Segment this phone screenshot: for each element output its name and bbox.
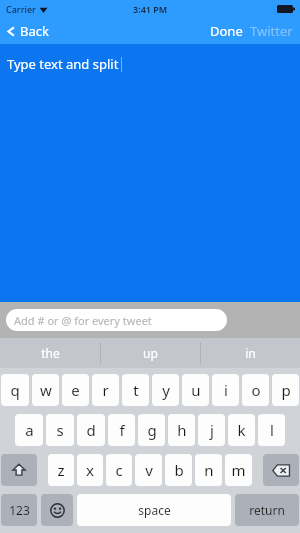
button[interactable]: q (1, 374, 29, 406)
staticText: l (270, 420, 274, 440)
staticText: return (249, 502, 285, 518)
staticText: d (86, 420, 96, 440)
staticText: space (138, 502, 171, 518)
button[interactable]: p (272, 374, 299, 406)
button[interactable]: Add # or @ for every tweet (6, 309, 227, 331)
staticText: g (147, 420, 157, 440)
button[interactable]: e (62, 374, 89, 406)
button[interactable]: space (77, 494, 231, 526)
button[interactable]: i (212, 374, 239, 406)
button[interactable]: u (182, 374, 209, 406)
staticText: Carrier (6, 3, 36, 15)
staticText: y (162, 380, 170, 400)
button[interactable]: y (152, 374, 179, 406)
button[interactable]: 123 (1, 494, 37, 526)
staticText: Add # or @ for every tweet (14, 313, 152, 328)
staticText: x (86, 460, 94, 480)
staticText: p (281, 380, 291, 400)
button[interactable]: s (46, 414, 74, 446)
staticText: q (10, 380, 20, 400)
button[interactable]: v (135, 454, 162, 486)
button[interactable]: b (165, 454, 192, 486)
staticText: v (145, 460, 153, 480)
button[interactable]: Backspace (263, 454, 299, 486)
staticText: r (102, 380, 109, 400)
staticText: the (41, 345, 60, 361)
button[interactable]: j (198, 414, 225, 446)
button[interactable]: Shift (1, 454, 37, 486)
button[interactable]: m (225, 454, 252, 486)
button[interactable]: t (122, 374, 149, 406)
button[interactable]: Done (207, 20, 246, 42)
button[interactable]: a (15, 414, 43, 446)
staticText: Done (210, 22, 243, 40)
staticText: c (115, 460, 123, 480)
button[interactable]: n (195, 454, 222, 486)
staticText: e (71, 380, 80, 400)
button[interactable]: h (168, 414, 195, 446)
button[interactable]: c (106, 454, 132, 486)
button[interactable]: d (77, 414, 105, 446)
staticText: in (245, 345, 256, 361)
staticText: 123 (9, 502, 30, 518)
staticText: b (174, 460, 184, 480)
staticText: Back (20, 22, 49, 40)
button[interactable]: k (228, 414, 255, 446)
button[interactable]: the (0, 338, 100, 368)
staticText: z (57, 460, 65, 480)
button[interactable]: Twitter (248, 20, 295, 42)
button[interactable]: Back (0, 20, 57, 42)
staticText: f (119, 420, 125, 440)
staticText: h (177, 420, 187, 440)
button[interactable]: Type text and split (0, 44, 300, 302)
staticText: i (224, 380, 228, 400)
button[interactable]: l (258, 414, 285, 446)
staticText: Type text and split (7, 55, 119, 73)
staticText: u (191, 380, 201, 400)
staticText: 3:41 PM (133, 3, 168, 15)
staticText: n (204, 460, 214, 480)
staticText: a (25, 420, 34, 440)
button[interactable]: g (138, 414, 165, 446)
button[interactable]: return (235, 494, 299, 526)
staticText: k (237, 420, 246, 440)
staticText: up (143, 345, 158, 361)
button[interactable]: r (92, 374, 119, 406)
button[interactable]: f (108, 414, 135, 446)
staticText: Twitter (250, 22, 293, 40)
button[interactable]: up (101, 338, 200, 368)
button[interactable]: w (32, 374, 59, 406)
staticText: s (56, 420, 64, 440)
staticText: j (210, 420, 214, 440)
button[interactable]: Emoji (41, 494, 73, 526)
staticText: w (40, 380, 52, 400)
button[interactable]: o (242, 374, 269, 406)
staticText: t (133, 380, 139, 400)
button[interactable]: z (48, 454, 74, 486)
staticText: o (251, 380, 261, 400)
staticText: m (231, 460, 246, 480)
button[interactable]: x (77, 454, 103, 486)
button[interactable]: in (201, 338, 300, 368)
